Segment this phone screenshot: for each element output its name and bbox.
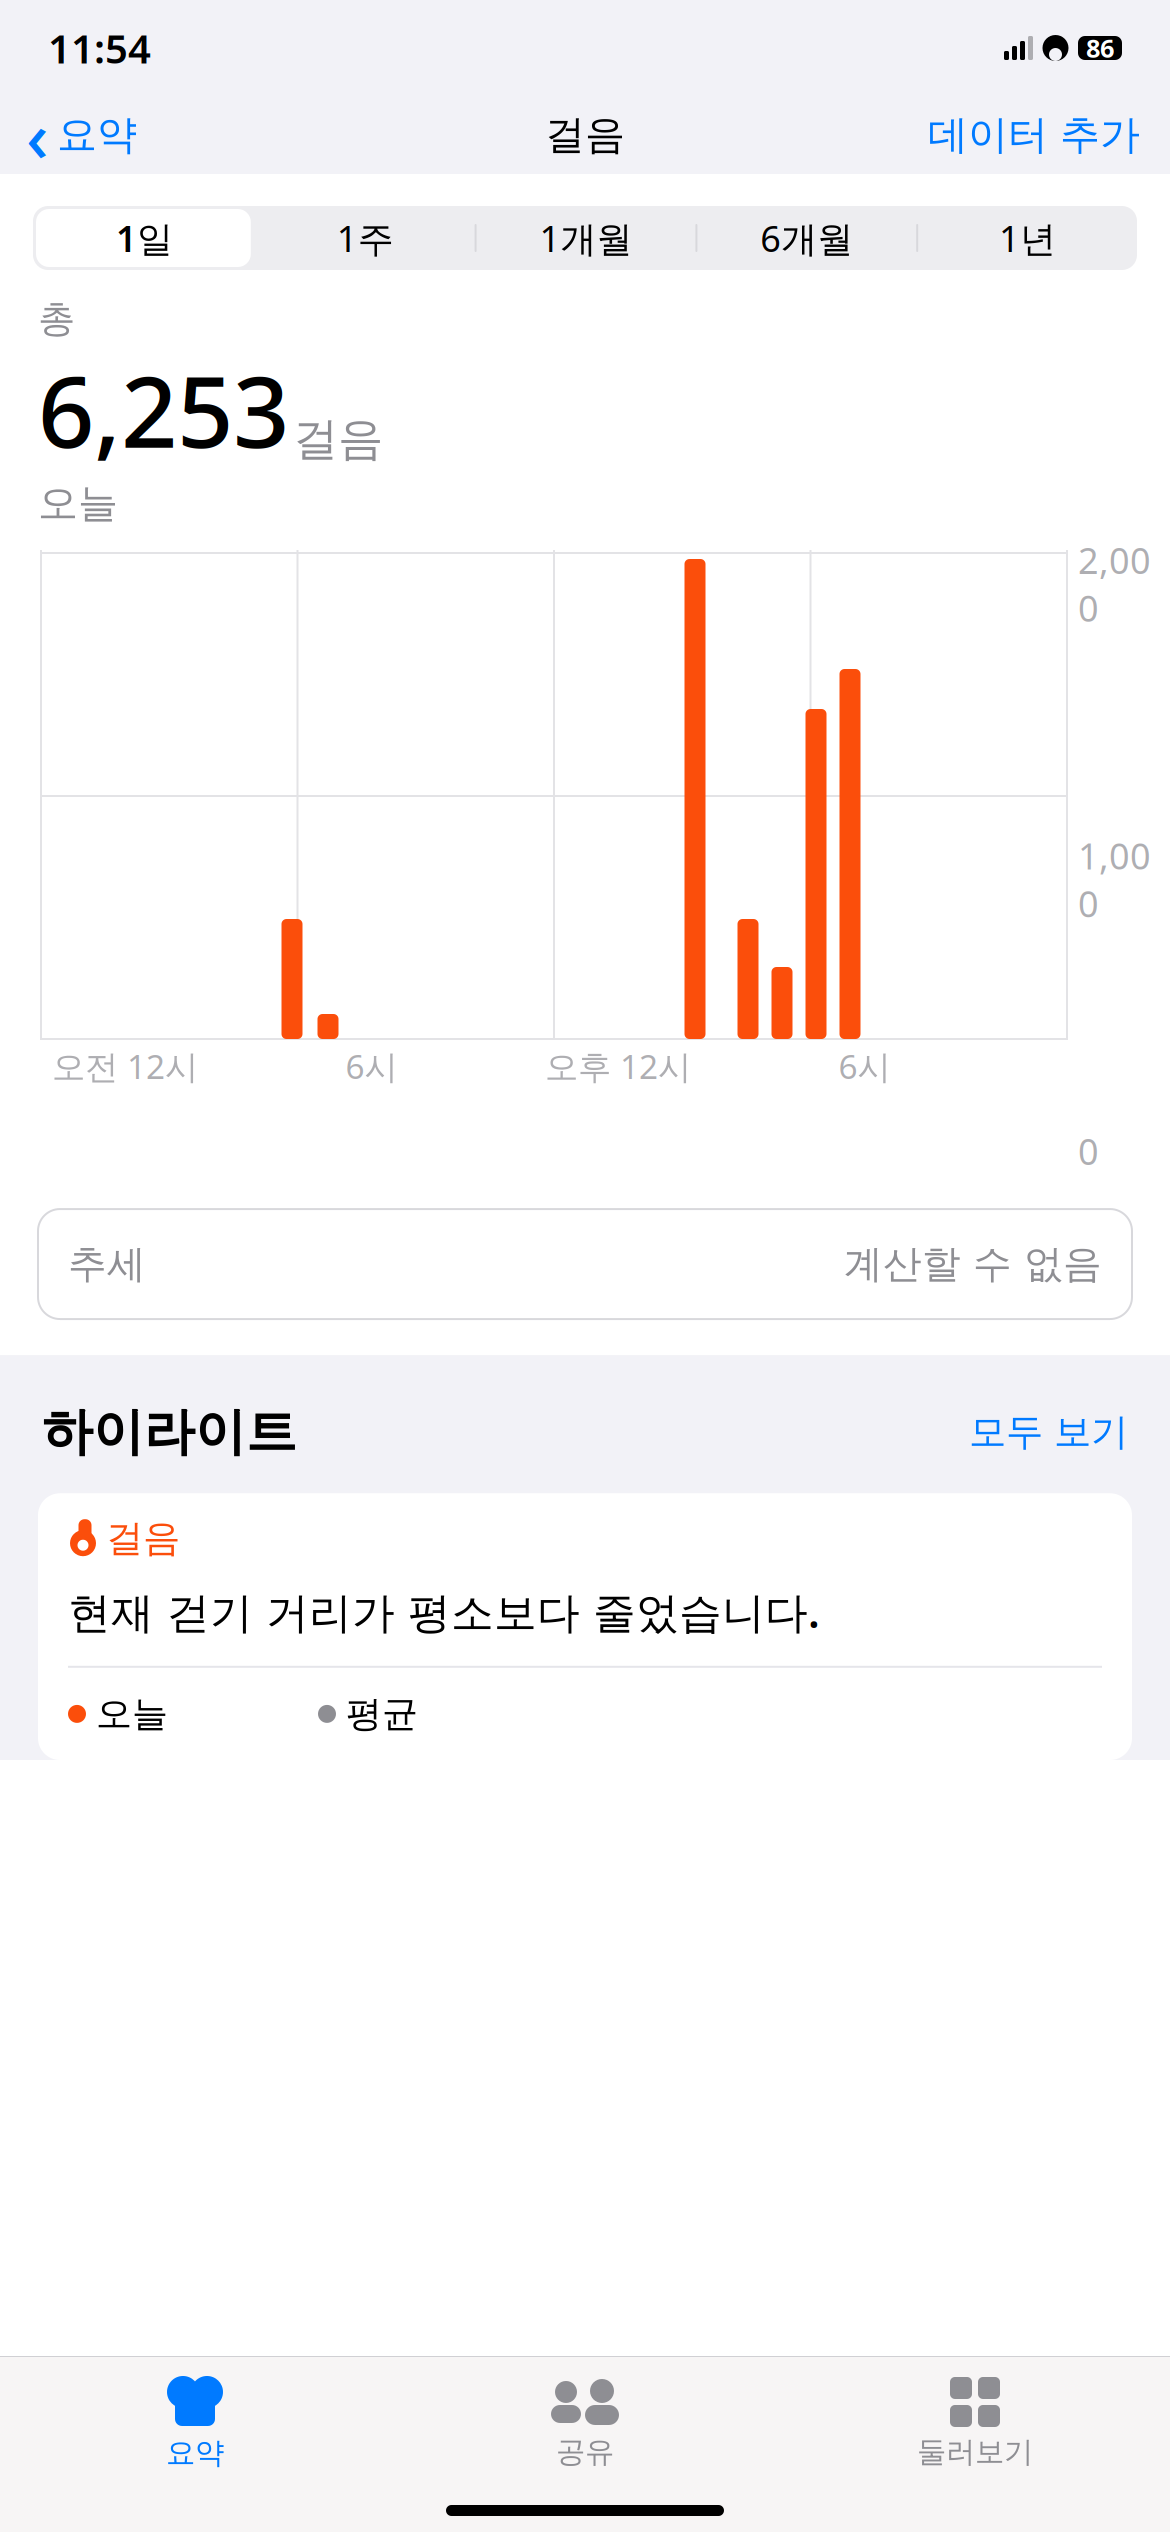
staticText: 걸음 <box>545 110 625 159</box>
staticText: 1주 <box>337 214 394 262</box>
staticText: 평균 <box>346 1692 418 1736</box>
staticText: 추세 <box>68 1240 146 1288</box>
staticText: 데이터 추가 <box>928 110 1140 159</box>
staticText: 공유 <box>556 2434 614 2470</box>
staticText: 86 <box>1086 31 1114 65</box>
staticText: 6개월 <box>760 214 853 262</box>
staticText: 하이라이트 <box>42 1401 297 1463</box>
staticText: 1년 <box>999 214 1056 262</box>
staticText: 모두 보기 <box>969 1409 1128 1455</box>
staticText: 현재 걷기 거리가 평소보다 줄었습니다. <box>68 1583 820 1640</box>
staticText: 총 <box>38 296 75 342</box>
button[interactable]: 걸음 <box>38 1493 1132 1760</box>
staticText: 걸음 <box>293 411 383 467</box>
staticText: ‹ <box>26 89 49 181</box>
staticText: 오늘 <box>96 1692 168 1736</box>
staticText: 오늘 <box>38 479 118 528</box>
button[interactable]: 1개월 <box>475 206 695 270</box>
staticText: 11:54 <box>48 21 151 74</box>
staticText: 6시 <box>838 1044 890 1088</box>
staticText: 1일 <box>116 214 173 262</box>
staticText: 2,000 <box>1078 536 1151 632</box>
button[interactable]: 데이터 추가 <box>928 104 1170 165</box>
staticText: 둘러보기 <box>917 2434 1033 2470</box>
staticText: 걸음 <box>106 1515 180 1561</box>
button[interactable]: 둘러보기 <box>780 2362 1170 2470</box>
button[interactable]: 공유 <box>390 2362 780 2470</box>
staticText: 1,000 <box>1078 832 1151 927</box>
staticText: 6,253 <box>38 344 289 475</box>
button[interactable]: 1일 <box>33 206 254 270</box>
button[interactable]: 추세 <box>38 1209 1132 1319</box>
staticText: 오후 12시 <box>545 1044 691 1088</box>
staticText: 계산할 수 없음 <box>844 1240 1102 1288</box>
button[interactable]: 1주 <box>254 206 475 270</box>
staticText: 오전 12시 <box>52 1044 198 1088</box>
button[interactable]: 6개월 <box>695 206 916 270</box>
button[interactable]: 모두 보기 <box>969 1409 1128 1455</box>
button[interactable]: 요약 <box>0 2361 390 2471</box>
staticText: 6시 <box>345 1044 397 1088</box>
staticText: 1개월 <box>539 214 632 262</box>
button[interactable]: ‹ <box>0 83 137 187</box>
staticText: 요약 <box>57 110 137 159</box>
staticText: 0 <box>1078 1127 1099 1175</box>
button[interactable]: 1년 <box>916 206 1137 270</box>
staticText: 요약 <box>166 2435 224 2471</box>
